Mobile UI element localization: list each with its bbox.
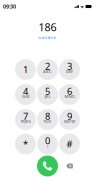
staticText: 4 — [23, 85, 28, 97]
staticText: 3 — [67, 60, 72, 72]
staticText: 9 — [67, 110, 72, 122]
button[interactable]: 3 — [59, 59, 80, 80]
button[interactable]: # — [59, 133, 80, 154]
staticText: 09:30 — [3, 3, 16, 10]
staticText: * — [23, 138, 28, 150]
staticText: PQRS — [20, 119, 30, 124]
button[interactable]: 添加到通讯录 — [38, 36, 56, 39]
button[interactable]: 5 — [37, 84, 58, 105]
staticText: 5 — [45, 85, 50, 97]
staticText: MNO — [64, 94, 74, 99]
staticText: 186 — [38, 20, 56, 34]
button[interactable]: 9 — [59, 109, 80, 130]
button[interactable]: * — [15, 133, 36, 154]
button[interactable]: 6 — [59, 84, 80, 105]
staticText: 8 — [45, 110, 50, 122]
button[interactable]: 4 — [15, 84, 36, 105]
staticText: 添加到通讯录 — [38, 36, 56, 39]
staticText: JKL — [44, 94, 50, 99]
staticText: GHI — [22, 94, 29, 99]
staticText: 0 — [45, 134, 50, 147]
staticText: 6 — [67, 85, 72, 97]
button[interactable]: 2 — [37, 59, 58, 80]
staticText: WXYZ — [64, 119, 75, 124]
button[interactable]: Delete — [59, 155, 80, 176]
staticText: TUV — [43, 119, 51, 124]
button[interactable]: 7 — [15, 109, 36, 130]
button[interactable]: 0 — [37, 133, 58, 154]
staticText: ABC — [43, 69, 52, 74]
staticText: # — [66, 138, 72, 150]
staticText: 1 — [23, 63, 28, 75]
button[interactable]: Call — [37, 155, 58, 176]
staticText: 7 — [23, 110, 28, 122]
staticText: 2 — [45, 60, 50, 72]
button[interactable]: 1 — [15, 59, 36, 80]
button[interactable]: 8 — [37, 109, 58, 130]
staticText: + — [46, 143, 48, 148]
staticText: DEF — [66, 69, 73, 74]
